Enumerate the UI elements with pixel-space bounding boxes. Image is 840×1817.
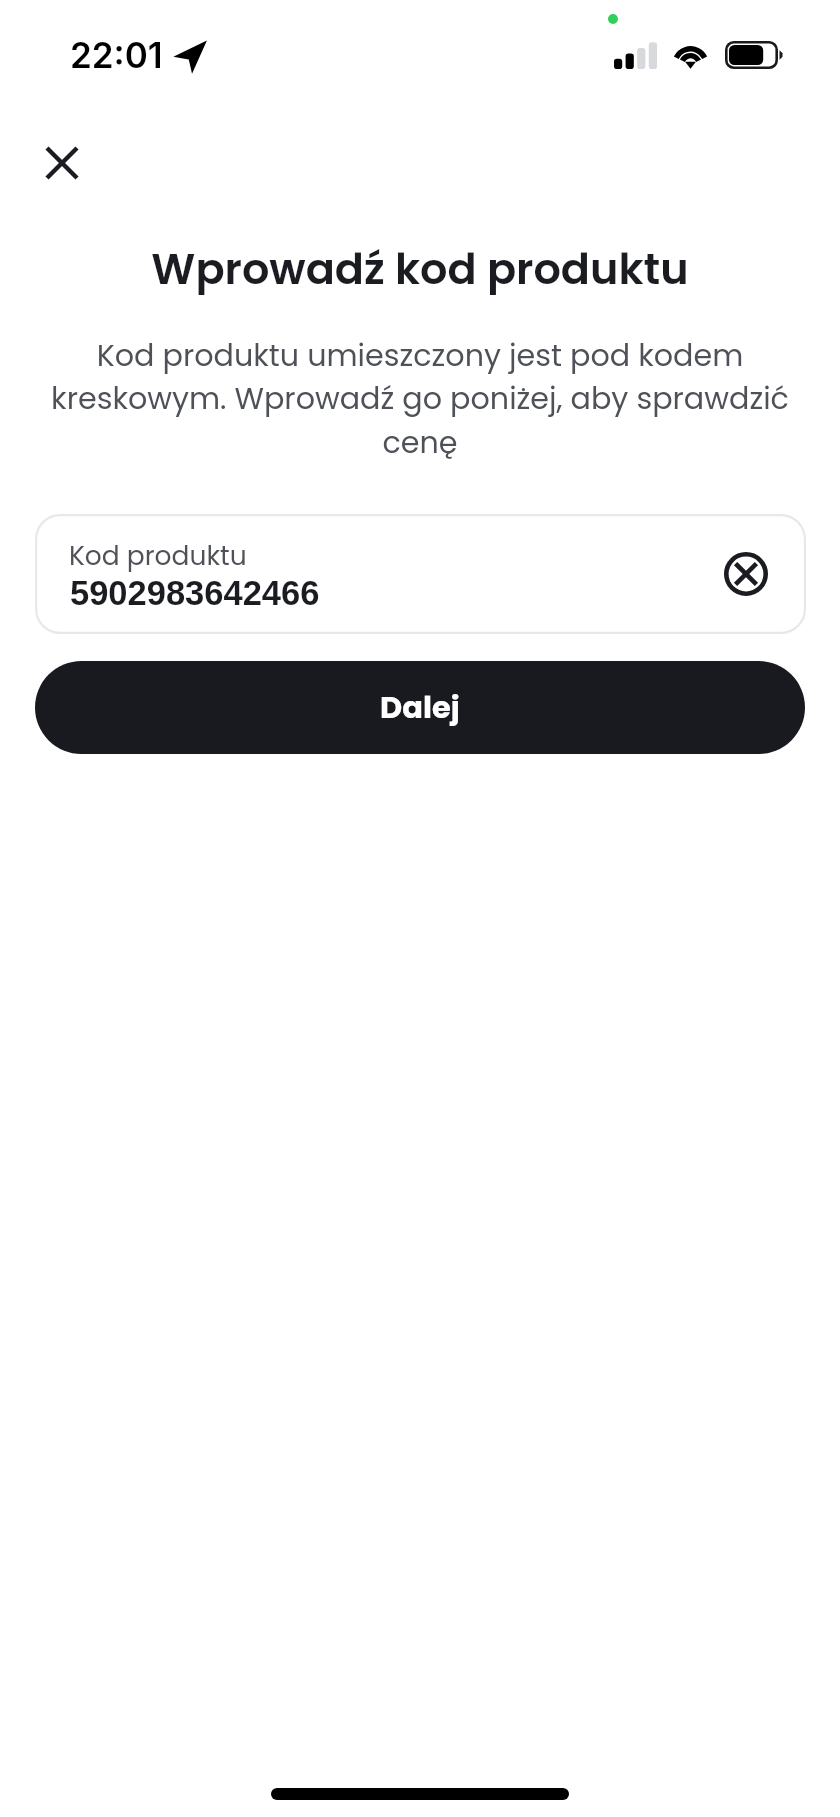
staticText: Kod produktu umieszczony jest pod kodem … xyxy=(40,334,800,463)
staticText: Kod produktu xyxy=(69,537,247,574)
button[interactable]: Clear xyxy=(715,543,777,605)
button[interactable]: Dalej xyxy=(35,661,805,754)
staticText: Dalej xyxy=(380,686,460,729)
staticText: 22:01 xyxy=(70,34,163,76)
staticText: Wprowadź kod produktu xyxy=(0,239,840,299)
button[interactable]: Close xyxy=(20,121,104,205)
staticText: 5902983642466 xyxy=(70,574,320,613)
button[interactable]: Kod produktu xyxy=(35,514,806,634)
